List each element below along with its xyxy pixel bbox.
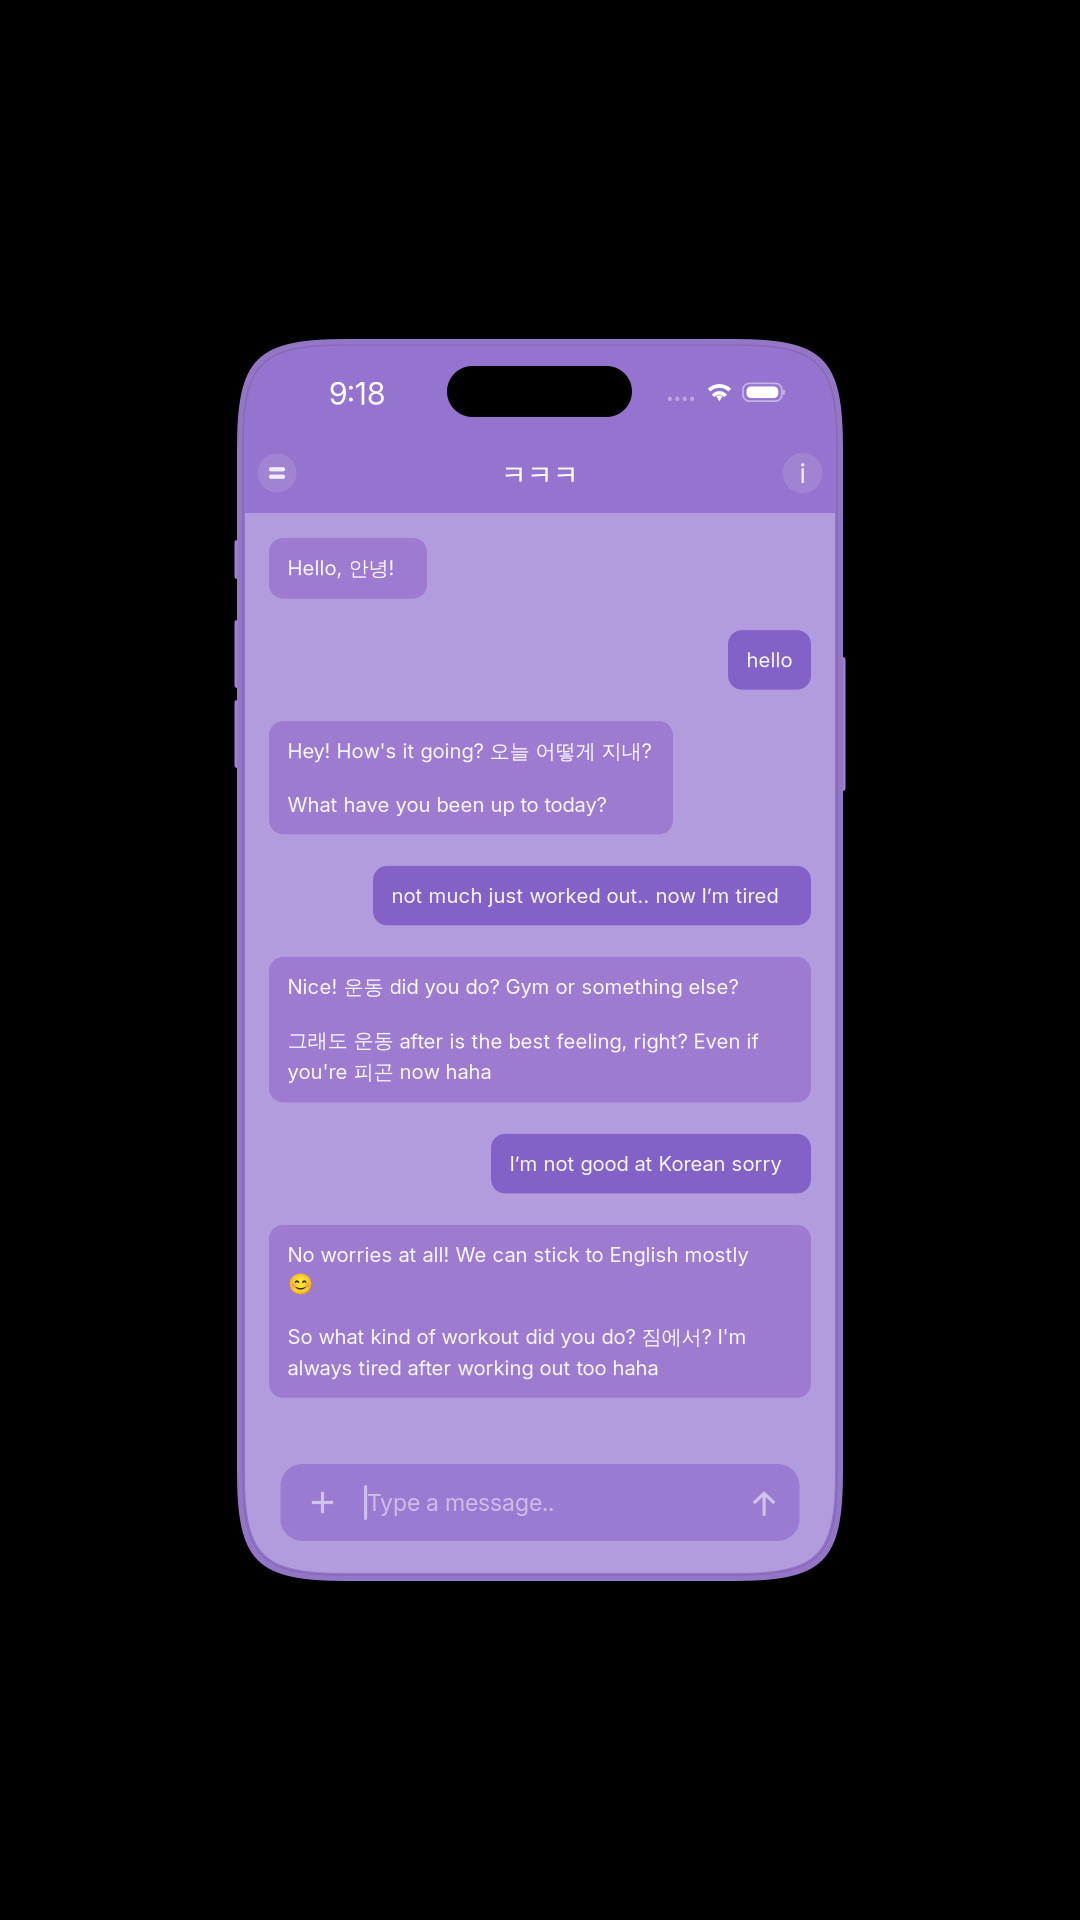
staticText: ㅋㅋㅋ: [501, 453, 579, 493]
staticText: hello: [746, 648, 792, 672]
staticText: i: [800, 456, 806, 490]
staticText: 그래도 운동 after is the best feeling, right?…: [287, 1028, 758, 1085]
staticText: So what kind of workout did you do? 짐에서?…: [287, 1324, 746, 1380]
staticText: not much just worked out.. now I’m tired: [391, 883, 778, 908]
button[interactable]: Conversation info: [779, 449, 827, 497]
staticText: 9:18: [329, 375, 385, 412]
staticText: I’m not good at Korean sorry: [509, 1151, 781, 1176]
staticText: Hey! How's it going? 오늘 어떻게 지내?: [287, 739, 651, 764]
button[interactable]: Add attachment: [296, 1464, 348, 1541]
button[interactable]: Send: [738, 1465, 790, 1542]
staticText: Hello, 안녕!: [287, 555, 394, 581]
button[interactable]: Menu: [253, 449, 301, 497]
staticText: What have you been up to today?: [287, 792, 606, 817]
staticText: Type a message..: [367, 1488, 554, 1517]
staticText: No worries at all! We can stick to Engli…: [287, 1242, 748, 1296]
staticText: Nice! 운동 did you do? Gym or something el…: [287, 974, 738, 1000]
